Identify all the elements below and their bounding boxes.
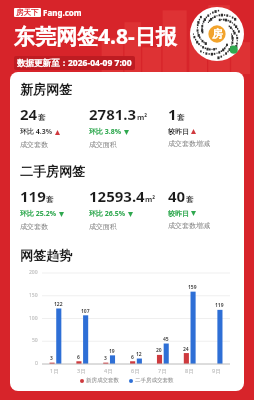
staticText: 环比 26.5% (89, 209, 126, 219)
staticText: 122 (54, 301, 63, 308)
staticText: Fang.com (43, 7, 82, 18)
staticText: 成交套数 (20, 222, 48, 231)
staticText: 6 (131, 354, 134, 361)
button[interactable]: 24 (20, 104, 89, 149)
staticText: 6日 (131, 367, 140, 375)
staticText: 成交套数增减 (168, 139, 210, 148)
staticText: 网签趋势 (20, 247, 72, 263)
staticText: 1 (168, 104, 177, 124)
staticText: 12 (136, 351, 142, 358)
button[interactable]: 119 (20, 186, 89, 231)
staticText: 成交套数增减 (168, 221, 210, 230)
staticText: 50 (32, 337, 38, 344)
staticText: 7日 (158, 367, 167, 375)
staticText: 套 (177, 113, 185, 122)
staticText: 套 (38, 113, 46, 122)
staticText: 12593.4 (89, 186, 145, 206)
button[interactable]: 二手房成交套数 (129, 377, 174, 384)
staticText: 100 (29, 315, 38, 322)
staticText: 107 (81, 308, 90, 315)
button[interactable]: 2781.3 (89, 104, 168, 149)
staticText: 8日 (185, 367, 194, 375)
staticText: 200 (29, 269, 38, 276)
staticText: 2781.3 (89, 104, 137, 124)
staticText: 3 (104, 355, 107, 362)
staticText: 9日 (212, 367, 221, 375)
staticText: 二手房成交套数 (135, 377, 174, 384)
button[interactable]: 12593.4 (89, 186, 168, 231)
staticText: 东莞网签4.8-日报 (14, 22, 177, 51)
staticText: 19 (109, 348, 115, 355)
staticText: 新房网签 (20, 81, 72, 97)
staticText: 3日 (77, 367, 86, 375)
staticText: 房天下 (16, 8, 39, 17)
staticText: 24 (20, 104, 38, 124)
staticText: 环比 4.3% (20, 127, 53, 137)
staticText: 较昨日 (168, 209, 189, 218)
staticText: 3 (50, 355, 53, 362)
staticText: 45 (163, 336, 169, 343)
staticText: 20 (156, 347, 162, 354)
staticText: 套 (46, 195, 54, 204)
button[interactable]: 1 (168, 104, 234, 148)
staticText: 成交套数 (20, 140, 48, 149)
staticText: 成交面积 (89, 222, 117, 231)
button[interactable]: 40 (168, 186, 234, 230)
staticText: 房 (212, 27, 223, 41)
staticText: 150 (29, 292, 38, 299)
staticText: 40 (168, 186, 186, 206)
staticText: 成交面积 (89, 140, 117, 149)
staticText: 1日 (50, 367, 59, 375)
staticText: 较昨日 (168, 127, 189, 136)
staticText: 24 (183, 346, 189, 353)
button[interactable]: 新房成交套数 (80, 377, 119, 384)
staticText: 119 (20, 186, 46, 206)
staticText: 0 (35, 360, 38, 367)
staticText: 159 (188, 284, 197, 291)
staticText: 6 (77, 354, 80, 361)
staticText: 环比 3.8% (89, 127, 122, 137)
staticText: m² (137, 112, 148, 122)
staticText: 二手房网签 (20, 163, 85, 179)
staticText: 环比 25.2% (20, 209, 57, 219)
staticText: 数据更新至：2026-04-09 7:00 (17, 57, 132, 69)
staticText: 119 (215, 302, 224, 309)
staticText: m² (145, 194, 156, 204)
staticText: 4日 (104, 367, 113, 375)
staticText: 新房成交套数 (86, 377, 119, 384)
button[interactable]: 房天下官方二维码 (190, 7, 244, 61)
staticText: 套 (186, 195, 194, 204)
